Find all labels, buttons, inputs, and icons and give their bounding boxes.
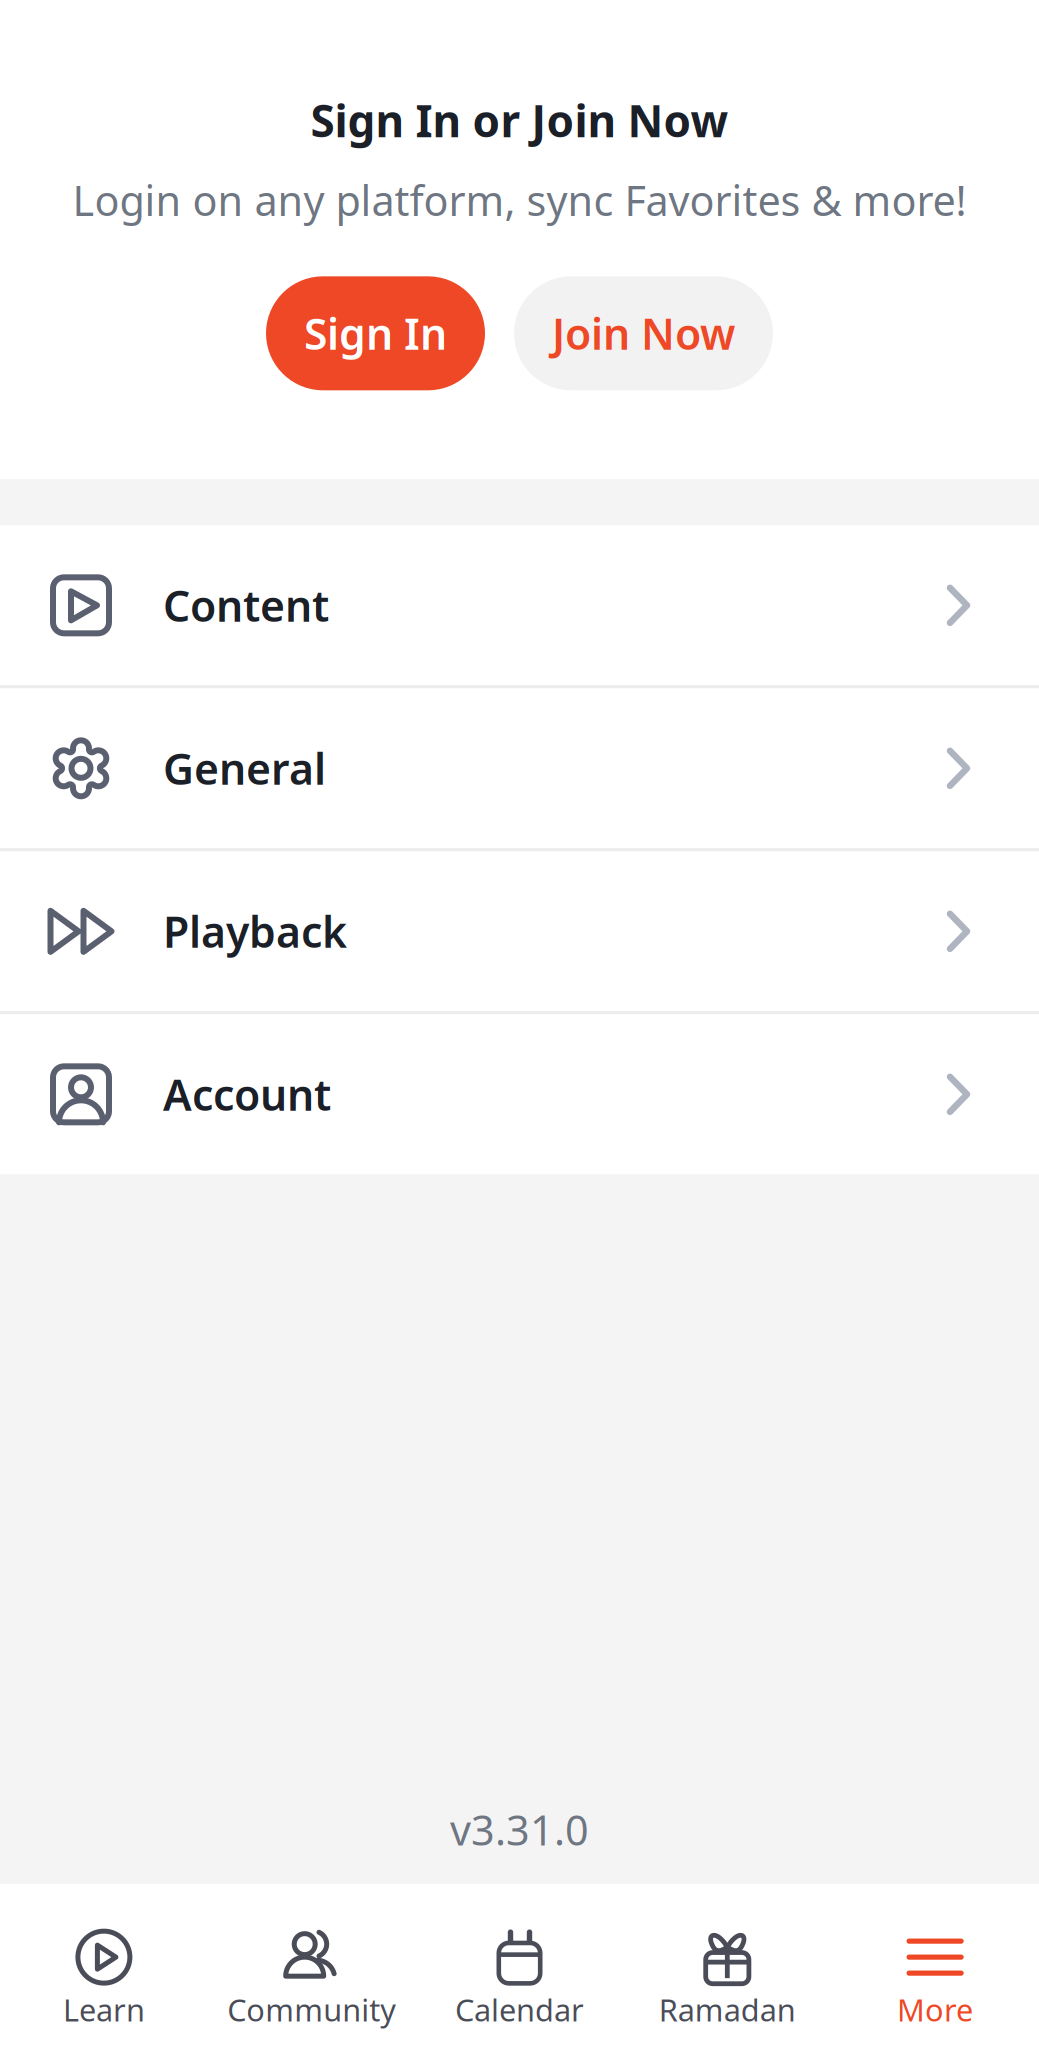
staticText: Community: [227, 1989, 396, 2030]
button[interactable]: Join Now: [514, 276, 773, 390]
staticText: Calendar: [455, 1989, 584, 2030]
staticText: Content: [163, 577, 329, 634]
button[interactable]: Content: [0, 525, 1039, 685]
button[interactable]: Learn: [0, 1886, 208, 2046]
button[interactable]: More: [831, 1886, 1039, 2046]
staticText: Account: [163, 1066, 331, 1123]
staticText: Playback: [163, 903, 347, 960]
button[interactable]: Sign In: [266, 276, 485, 390]
staticText: v3.31.0: [450, 1802, 589, 1857]
button[interactable]: Ramadan: [623, 1886, 831, 2046]
staticText: Join Now: [552, 305, 735, 362]
staticText: Sign In: [304, 305, 447, 362]
button[interactable]: Playback: [0, 851, 1039, 1011]
staticText: General: [163, 740, 326, 797]
button[interactable]: Community: [208, 1886, 416, 2046]
button[interactable]: General: [0, 688, 1039, 848]
staticText: More: [897, 1989, 973, 2030]
staticText: Sign In or Join Now: [310, 91, 728, 149]
button[interactable]: Calendar: [416, 1886, 623, 2046]
staticText: Ramadan: [659, 1989, 796, 2030]
staticText: Learn: [63, 1989, 145, 2030]
button[interactable]: Account: [0, 1014, 1039, 1174]
staticText: Login on any platform, sync Favorites & …: [72, 172, 966, 227]
